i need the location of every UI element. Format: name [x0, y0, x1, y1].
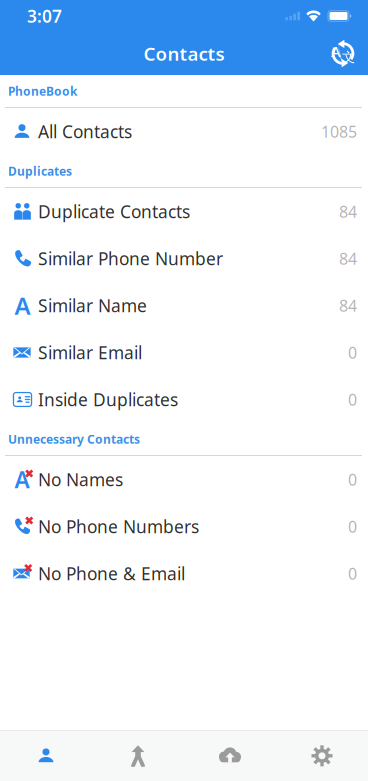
staticText: Contacts — [143, 41, 224, 66]
button[interactable]: Backup — [184, 731, 276, 781]
staticText: Duplicates — [8, 163, 72, 179]
staticText: 84 — [339, 201, 357, 222]
staticText: Similar Email — [38, 341, 142, 364]
staticText: A — [14, 290, 30, 321]
staticText: 3:07 — [27, 4, 62, 27]
button[interactable]: No Phone Numbers — [0, 503, 368, 550]
button[interactable]: Duplicate Contacts — [0, 188, 368, 235]
staticText: 0 — [348, 342, 357, 363]
staticText: PhoneBook — [8, 83, 77, 99]
staticText: No Phone & Email — [38, 562, 185, 585]
staticText: No Phone Numbers — [38, 515, 199, 538]
button[interactable]: Similar Phone Number — [0, 235, 368, 282]
button[interactable]: Inside Duplicates — [0, 376, 368, 423]
staticText: 84 — [339, 248, 357, 269]
staticText: A — [331, 41, 341, 61]
staticText: 0 — [348, 516, 357, 537]
button[interactable]: No Phone & Email — [0, 550, 368, 597]
staticText: All Contacts — [38, 120, 132, 143]
staticText: Similar Phone Number — [38, 247, 223, 270]
button[interactable]: Translate — [321, 32, 368, 75]
staticText: 1085 — [321, 121, 357, 142]
button[interactable]: Similar Email — [0, 329, 368, 376]
staticText: Duplicate Contacts — [38, 200, 190, 223]
staticText: 文 — [342, 49, 355, 65]
staticText: Inside Duplicates — [38, 388, 178, 411]
button[interactable]: All Contacts — [0, 108, 368, 155]
staticText: 0 — [348, 389, 357, 410]
button[interactable]: A — [0, 456, 368, 503]
staticText: A — [14, 464, 29, 494]
button[interactable]: Merge Duplicates — [92, 731, 184, 781]
staticText: 0 — [348, 469, 357, 490]
staticText: 84 — [339, 295, 357, 316]
staticText: Unnecessary Contacts — [8, 431, 140, 447]
button[interactable]: Contacts — [0, 731, 92, 781]
staticText: 0 — [348, 563, 357, 584]
staticText: Similar Name — [38, 294, 147, 317]
button[interactable]: Settings — [276, 731, 368, 781]
staticText: No Names — [38, 468, 123, 491]
button[interactable]: A — [0, 282, 368, 329]
